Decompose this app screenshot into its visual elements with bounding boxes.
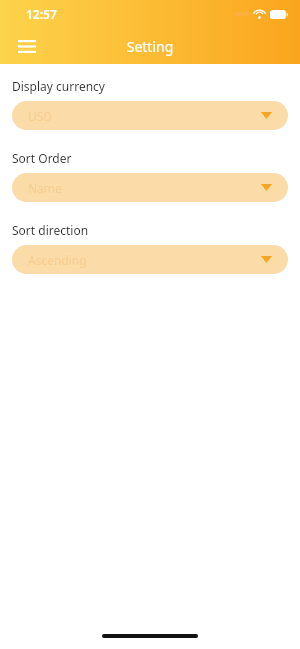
staticText: 12:57 bbox=[26, 6, 57, 22]
staticText: Sort direction bbox=[12, 222, 89, 238]
button[interactable]: Name bbox=[12, 173, 288, 202]
staticText: Setting bbox=[0, 37, 300, 56]
button[interactable]: Menu bbox=[10, 29, 44, 63]
staticText: Name bbox=[28, 180, 261, 196]
button[interactable]: USD bbox=[12, 101, 288, 130]
button[interactable]: Ascending bbox=[12, 245, 288, 274]
staticText: Ascending bbox=[28, 252, 261, 268]
staticText: Sort Order bbox=[12, 150, 72, 166]
staticText: Display currency bbox=[12, 78, 105, 94]
